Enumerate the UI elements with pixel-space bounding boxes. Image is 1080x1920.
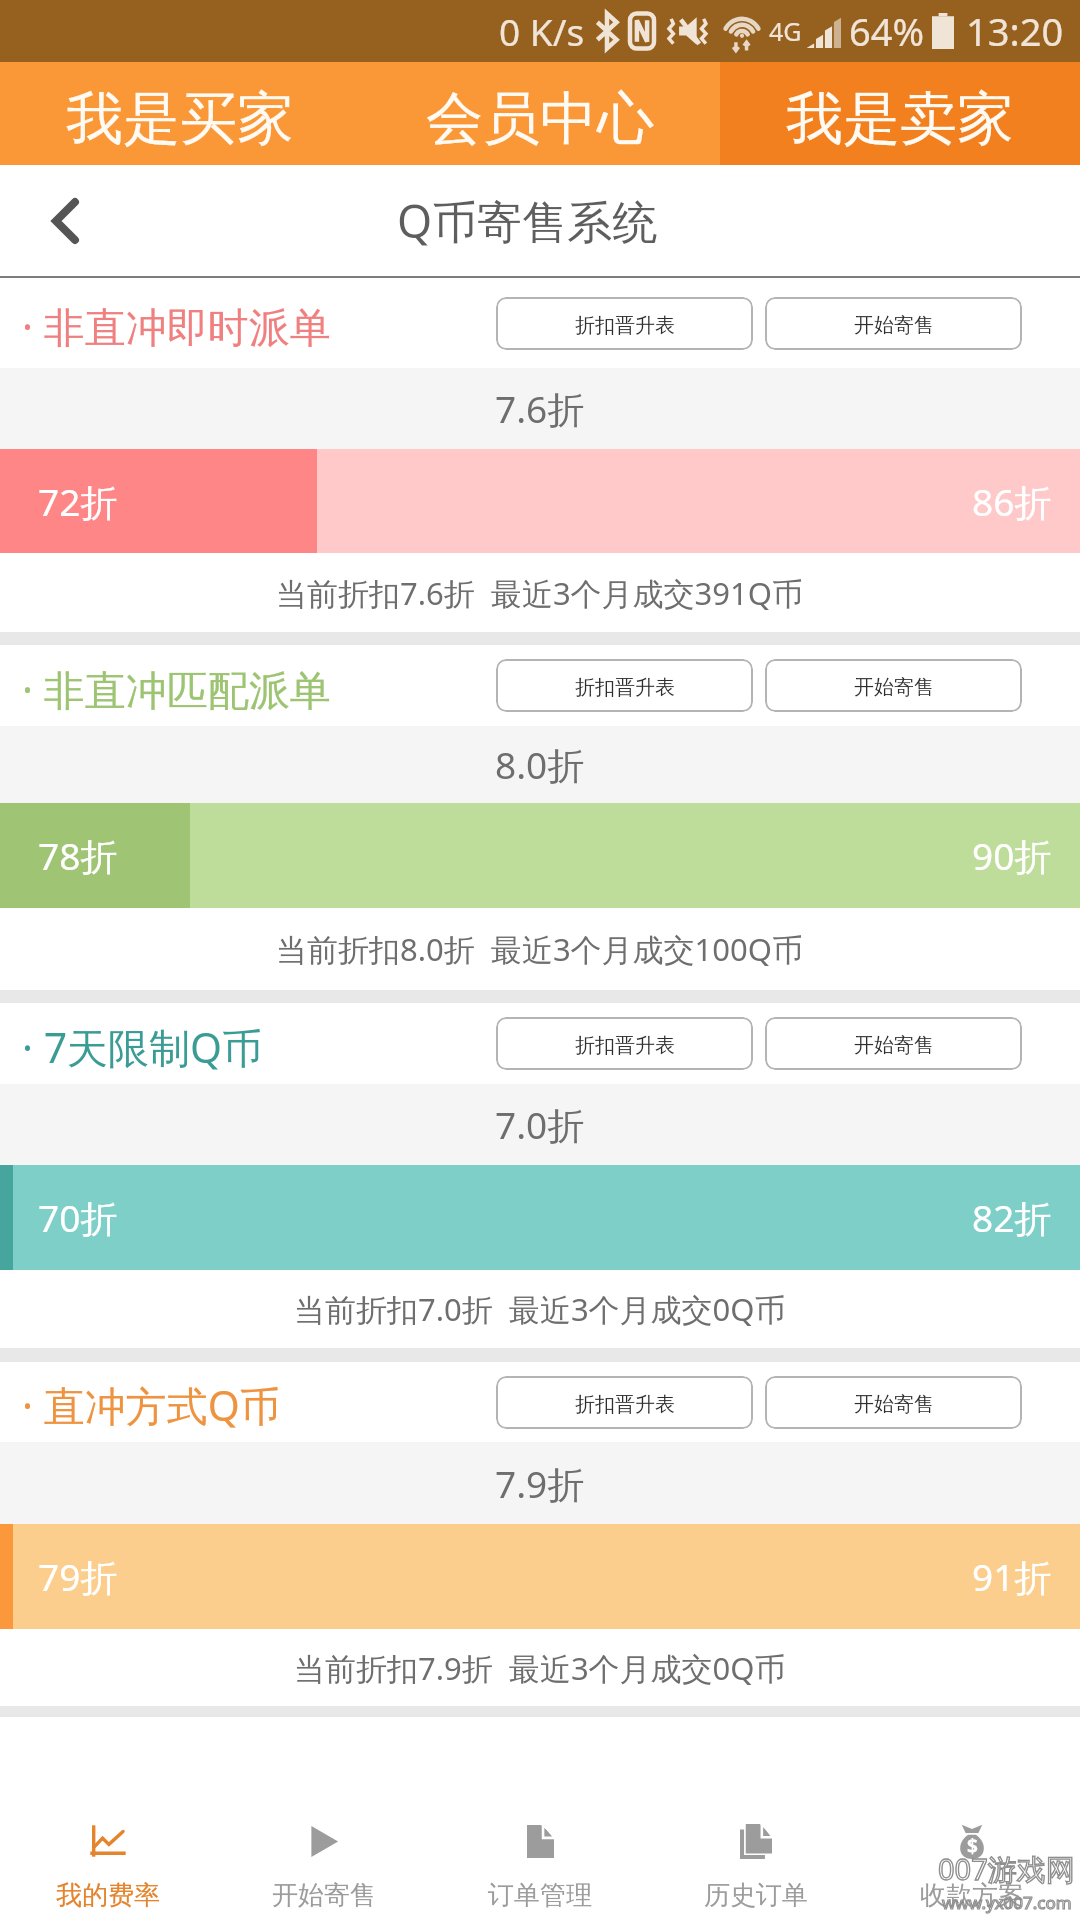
staticText: 90折 xyxy=(972,830,1052,881)
staticText: 开始寄售 xyxy=(854,1392,934,1417)
staticText: 开始寄售 xyxy=(854,313,934,338)
staticText: www.yx007.com xyxy=(942,1891,1072,1914)
staticText: 82折 xyxy=(972,1192,1052,1243)
button[interactable]: $ xyxy=(864,1717,1080,1920)
button[interactable]: 开始寄售 xyxy=(216,1717,432,1920)
button[interactable]: 我是卖家 xyxy=(720,62,1080,165)
staticText: · 7天限制Q币 xyxy=(22,1019,264,1075)
staticText: 当前折扣7.6折 最近3个月成交391Q币 xyxy=(276,572,804,614)
staticText: 折扣晋升表 xyxy=(575,313,675,338)
button[interactable]: 历史订单 xyxy=(648,1717,864,1920)
staticText: · 非直冲匹配派单 xyxy=(22,661,331,717)
staticText: 折扣晋升表 xyxy=(575,1392,675,1417)
staticText: 当前折扣7.0折 最近3个月成交0Q币 xyxy=(294,1288,786,1330)
staticText: 70折 xyxy=(38,1192,118,1243)
staticText: 007游戏网 xyxy=(938,1849,1075,1889)
staticText: 收款方案 xyxy=(920,1879,1024,1912)
staticText: 历史订单 xyxy=(704,1879,808,1912)
staticText: 我是卖家 xyxy=(786,83,1014,155)
staticText: · 直冲方式Q币 xyxy=(22,1377,281,1433)
button[interactable]: 折扣晋升表 xyxy=(496,297,753,350)
staticText: 4G xyxy=(769,14,802,48)
button[interactable]: 开始寄售 xyxy=(765,297,1022,350)
button[interactable]: 开始寄售 xyxy=(765,659,1022,712)
staticText: 我是买家 xyxy=(66,83,294,155)
staticText: 开始寄售 xyxy=(272,1879,376,1912)
button[interactable]: 我的费率 xyxy=(0,1717,216,1920)
staticText: 86折 xyxy=(972,476,1052,527)
staticText: 我的费率 xyxy=(56,1879,160,1912)
button[interactable]: 折扣晋升表 xyxy=(496,1376,753,1429)
staticText: 79折 xyxy=(38,1551,118,1602)
staticText: 72折 xyxy=(38,476,118,527)
staticText: 会员中心 xyxy=(426,83,654,155)
staticText: 0 K/s xyxy=(499,6,585,56)
staticText: 91折 xyxy=(972,1551,1052,1602)
staticText: 7.6折 xyxy=(495,383,585,434)
staticText: 当前折扣7.9折 最近3个月成交0Q币 xyxy=(294,1647,786,1689)
staticText: 7.9折 xyxy=(495,1458,585,1509)
staticText: 8.0折 xyxy=(495,739,585,790)
button[interactable]: 折扣晋升表 xyxy=(496,1017,753,1070)
staticText: 开始寄售 xyxy=(854,1033,934,1058)
button[interactable]: Back xyxy=(0,165,130,276)
button[interactable]: 订单管理 xyxy=(432,1717,648,1920)
staticText: 折扣晋升表 xyxy=(575,1033,675,1058)
button[interactable]: 我是买家 xyxy=(0,62,360,165)
staticText: 78折 xyxy=(38,830,118,881)
button[interactable]: 会员中心 xyxy=(360,62,720,165)
staticText: 13:20 xyxy=(966,5,1064,57)
staticText: · 非直冲即时派单 xyxy=(22,298,331,354)
staticText: 当前折扣8.0折 最近3个月成交100Q币 xyxy=(276,928,804,970)
button[interactable]: 折扣晋升表 xyxy=(496,659,753,712)
button[interactable]: 开始寄售 xyxy=(765,1376,1022,1429)
staticText: 开始寄售 xyxy=(854,675,934,700)
staticText: 64% xyxy=(849,5,925,57)
staticText: $ xyxy=(967,1833,978,1859)
button[interactable]: 开始寄售 xyxy=(765,1017,1022,1070)
staticText: 订单管理 xyxy=(488,1879,592,1912)
staticText: Q币寄售系统 xyxy=(397,190,658,251)
staticText: 7.0折 xyxy=(495,1099,585,1150)
staticText: 折扣晋升表 xyxy=(575,675,675,700)
